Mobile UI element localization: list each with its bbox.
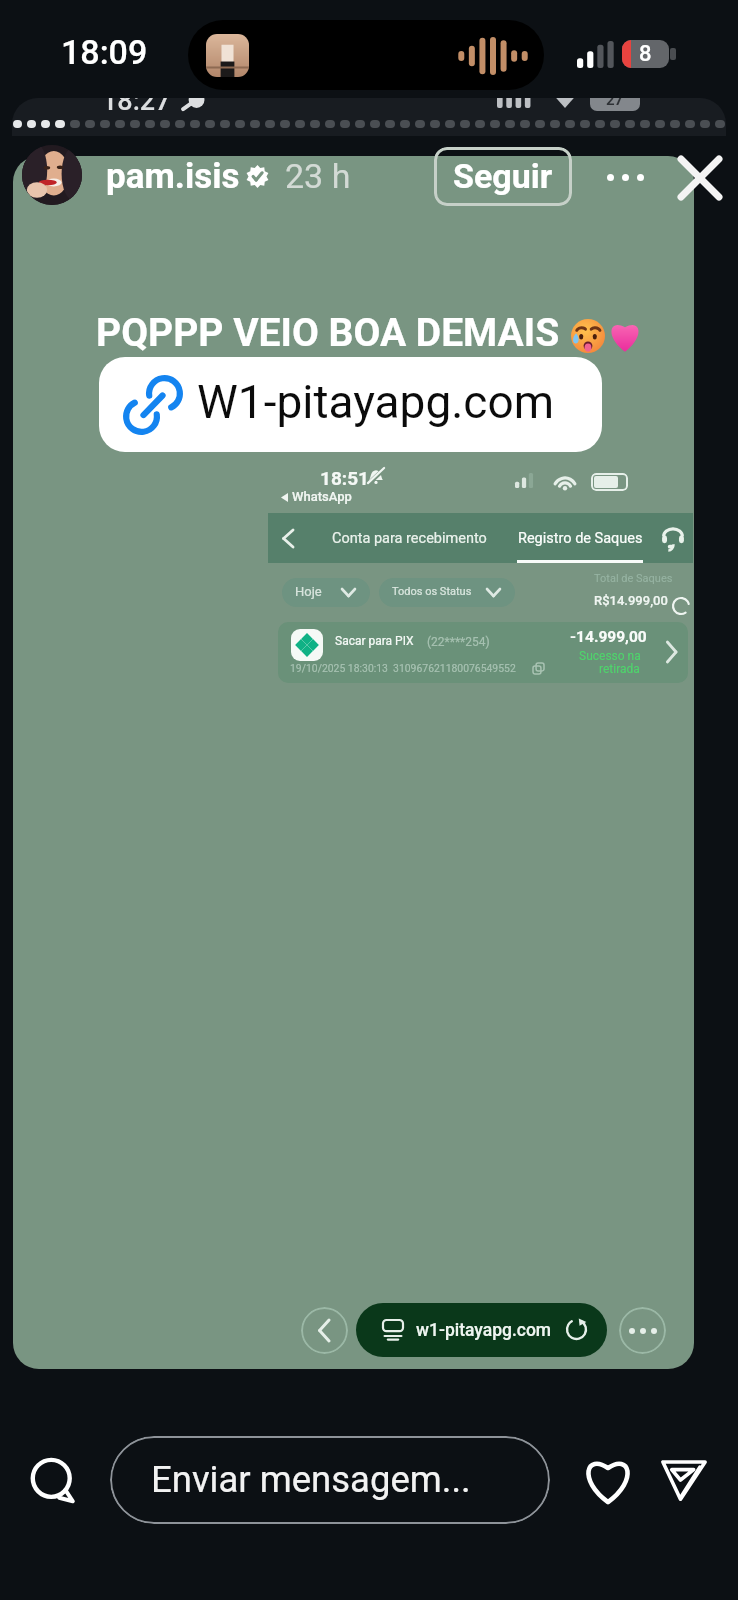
button[interactable]: W1-pitayapg.com <box>99 357 602 452</box>
staticText: 18:51 <box>320 467 369 489</box>
staticText: 18:27 <box>102 98 171 117</box>
button[interactable]: Like <box>578 1450 638 1510</box>
staticText: Seguir <box>453 156 553 196</box>
staticText: WhatsApp <box>292 489 352 504</box>
staticText: 19/10/2025 18:30:13 31096762118007654955… <box>290 662 516 674</box>
button[interactable]: pam.isis <box>106 154 351 198</box>
staticText: 23 h <box>285 156 351 196</box>
button[interactable]: w1-pitayapg.com <box>356 1303 607 1357</box>
staticText: Registro de Saques <box>518 530 643 547</box>
staticText: Conta para recebimento <box>332 530 487 547</box>
button[interactable]: Close <box>672 150 728 206</box>
staticText: Todos os Status <box>392 585 472 598</box>
button[interactable]: Hoje <box>282 578 370 607</box>
staticText: 27 <box>606 98 624 109</box>
staticText: R$14.999,00 <box>594 593 668 608</box>
button[interactable]: Enviar mensagem... <box>110 1436 550 1524</box>
staticText: Total de Saques <box>594 572 673 585</box>
staticText: 8 <box>639 41 652 67</box>
button[interactable]: More options <box>596 148 654 206</box>
staticText: 18:09 <box>61 32 148 72</box>
staticText: Hoje <box>295 584 322 599</box>
staticText: Sacar para PIX <box>335 634 414 648</box>
button[interactable]: Back <box>301 1307 348 1354</box>
staticText: (22****254) <box>427 635 490 649</box>
button[interactable]: Sacar para PIX <box>278 622 688 683</box>
button[interactable]: Share <box>654 1450 714 1510</box>
button[interactable]: PQPPP VEIO BOA DEMAIS <box>13 156 694 1369</box>
button[interactable]: Seguir <box>434 147 572 206</box>
button[interactable]: More options <box>619 1307 666 1354</box>
button[interactable]: Direct message <box>22 1450 84 1512</box>
staticText: W1-pitayapg.com <box>197 375 555 429</box>
button[interactable]: Profile picture <box>22 145 82 205</box>
staticText: retirada <box>599 662 640 676</box>
staticText: Sucesso na <box>579 649 641 663</box>
staticText: Enviar mensagem... <box>151 1458 471 1501</box>
button[interactable]: Todos os Status <box>379 578 515 607</box>
staticText: pam.isis <box>106 156 240 197</box>
staticText: PQPPP VEIO BOA DEMAIS <box>96 310 560 356</box>
staticText: -14.999,00 <box>570 628 647 646</box>
staticText: w1-pitayapg.com <box>416 1320 552 1341</box>
